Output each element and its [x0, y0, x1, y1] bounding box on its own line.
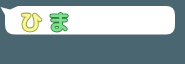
staticText: ひ ま [20, 6, 71, 37]
staticText: ひ ま [20, 6, 71, 37]
